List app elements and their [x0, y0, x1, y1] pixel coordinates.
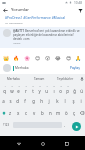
staticText: Merhaba: [7, 77, 20, 81]
button[interactable]: 8: [50, 83, 57, 95]
staticText: 10:48: [74, 1, 83, 5]
staticText: 8: [53, 85, 55, 88]
button[interactable]: 2: [8, 83, 15, 95]
button[interactable]: Recents: [61, 138, 72, 149]
staticText: 7: [46, 85, 48, 88]
button[interactable]: Home: [37, 138, 48, 149]
button[interactable]: 😍: [65, 54, 72, 61]
button[interactable]: x: [14, 107, 22, 119]
staticText: 2: [11, 85, 13, 88]
staticText: j: [48, 98, 50, 104]
button[interactable]: v: [30, 107, 38, 119]
staticText: Paylaş: [70, 66, 80, 70]
button[interactable]: Merhaba: [0, 74, 26, 83]
button[interactable]: ö: [62, 107, 70, 119]
staticText: 0: [67, 85, 69, 88]
staticText: 5: [32, 85, 34, 88]
button[interactable]: ş: [69, 95, 77, 107]
button[interactable]: @AliT71 Benzehod'veri çok kazandıran etk…: [0, 27, 85, 48]
button[interactable]: 6: [36, 83, 43, 95]
button[interactable]: Send: [68, 119, 85, 133]
button[interactable]: 3: [15, 83, 22, 95]
button[interactable]: n: [46, 107, 54, 119]
button[interactable]: j: [45, 95, 53, 107]
button[interactable]: i: [77, 95, 85, 107]
button[interactable]: 🙏: [75, 54, 82, 61]
staticText: f: [24, 98, 26, 104]
button[interactable]: 😂: [54, 54, 61, 61]
staticText: ı: [53, 88, 55, 94]
staticText: 4: [25, 85, 27, 88]
staticText: Merhaba: [15, 66, 29, 70]
button[interactable]: c: [22, 107, 30, 119]
staticText: 👑: [3, 55, 10, 61]
button[interactable]: Shift: [0, 107, 7, 119]
button[interactable]: 7: [43, 83, 50, 95]
staticText: @AliT71 Benzehod'veri çok kazandıran etk…: [13, 29, 83, 41]
button[interactable]: Teşekkürler: [52, 74, 78, 83]
button[interactable]: Back: [1, 6, 9, 14]
button[interactable]: 1: [0, 83, 8, 95]
staticText: h: [40, 98, 43, 104]
staticText: i: [80, 98, 82, 104]
staticText: w: [10, 88, 14, 94]
staticText: ö: [65, 110, 68, 116]
staticText: 9: [60, 85, 62, 88]
button[interactable]: ?123: [0, 119, 13, 131]
button[interactable]: Back: [13, 138, 24, 149]
staticText: v: [33, 110, 36, 116]
staticText: Yanıtla: [13, 42, 21, 45]
staticText: 😊: [35, 55, 41, 61]
button[interactable]: g: [29, 95, 37, 107]
staticText: l: [64, 98, 66, 104]
staticText: x: [17, 110, 20, 116]
staticText: Teşekkürler: [57, 77, 74, 81]
button[interactable]: m: [54, 107, 62, 119]
button[interactable]: 0: [64, 83, 71, 95]
button[interactable]: Paylaş: [68, 64, 82, 72]
button[interactable]: a: [0, 95, 7, 107]
staticText: ?123: [3, 123, 10, 127]
button[interactable]: 🌸: [24, 54, 31, 61]
button[interactable]: d: [14, 95, 21, 107]
button[interactable]: 😊: [34, 54, 41, 61]
staticText: o: [59, 88, 62, 94]
button[interactable]: 😮: [44, 54, 51, 61]
staticText: y: [38, 88, 41, 94]
staticText: 😍: [66, 55, 72, 61]
button[interactable]: z: [7, 107, 14, 119]
staticText: t: [32, 88, 34, 94]
button[interactable]: h: [37, 95, 45, 107]
staticText: #ProDress1 #GenPerformance #Musical: [5, 16, 66, 20]
button[interactable]: ü: [78, 83, 85, 95]
staticText: 🌸: [24, 55, 31, 61]
staticText: u: [45, 88, 48, 94]
button[interactable]: Tamam: [26, 74, 52, 83]
staticText: b: [41, 110, 44, 116]
button[interactable]: s: [7, 95, 14, 107]
button[interactable]: b: [38, 107, 46, 119]
button[interactable]: ç: [70, 107, 78, 119]
button[interactable]: Backspace: [78, 107, 85, 119]
staticText: n: [49, 110, 52, 116]
button[interactable]: k: [53, 95, 61, 107]
button[interactable]: .: [62, 119, 68, 131]
staticText: s: [9, 98, 12, 104]
button[interactable]: Voice input: [78, 74, 85, 83]
staticText: q: [3, 88, 6, 94]
button[interactable]: 5: [29, 83, 36, 95]
button[interactable]: Filter: [76, 6, 84, 14]
staticText: 😮: [45, 55, 51, 61]
button[interactable]: ğ: [71, 83, 78, 95]
button[interactable]: 👑: [3, 54, 10, 61]
button[interactable]: 9: [57, 83, 64, 95]
button[interactable]: 🔥: [13, 54, 20, 61]
button[interactable]: l: [61, 95, 69, 107]
staticText: 🔥: [13, 55, 20, 61]
staticText: ş: [72, 98, 75, 104]
staticText: .: [64, 122, 66, 128]
staticText: 😂: [55, 55, 61, 61]
button[interactable]: 4: [22, 83, 29, 95]
button[interactable]: f: [21, 95, 29, 107]
